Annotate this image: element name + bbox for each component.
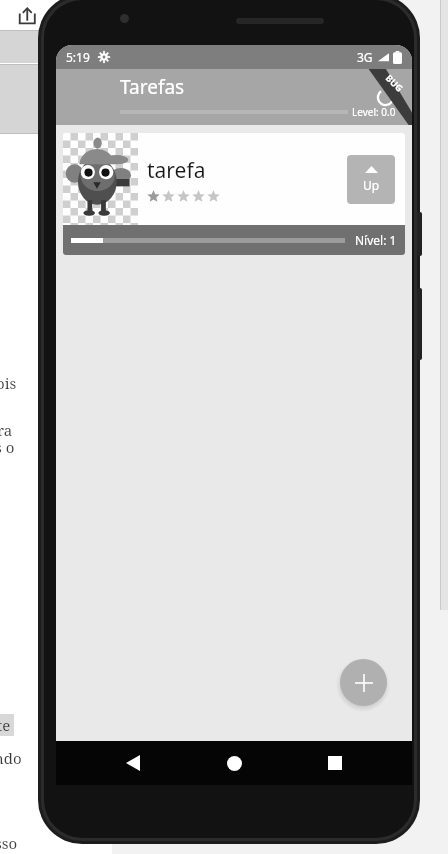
staticText: Level: 0.0 (352, 105, 396, 119)
staticText: sso (0, 833, 18, 853)
button[interactable]: Refresh (368, 80, 402, 114)
staticText: Tarefas (120, 74, 185, 100)
staticText: ra (0, 420, 13, 440)
staticText: 5:19 (66, 49, 90, 65)
staticText: BUG (384, 72, 406, 94)
staticText: tarefa (147, 156, 206, 185)
staticText: ois (0, 373, 17, 393)
staticText: te (0, 715, 11, 735)
button[interactable]: Add task (340, 659, 387, 706)
staticText: Nível: 1 (355, 232, 397, 248)
button[interactable]: Home (210, 741, 258, 785)
staticText: 3G (357, 49, 373, 65)
button[interactable]: Up (347, 155, 395, 204)
button[interactable]: Back (109, 741, 157, 785)
button[interactable]: tarefa (63, 133, 405, 255)
staticText: ndo (0, 748, 22, 768)
button[interactable]: Recent apps (311, 741, 359, 785)
staticText: s o (0, 437, 15, 457)
staticText: Up (363, 177, 380, 193)
